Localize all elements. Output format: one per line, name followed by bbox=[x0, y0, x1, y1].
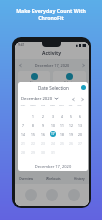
staticText: 17 bbox=[51, 132, 55, 136]
staticText: 6 bbox=[79, 114, 81, 118]
staticText: 31 bbox=[51, 150, 55, 154]
staticText: TUE bbox=[38, 104, 48, 107]
staticText: 1 bbox=[32, 114, 34, 118]
staticText: Make Everyday Count With bbox=[16, 7, 86, 14]
staticText: 9 bbox=[42, 123, 44, 127]
staticText: Workouts bbox=[46, 177, 61, 181]
staticText: 21 bbox=[21, 141, 25, 145]
staticText: 2 bbox=[42, 114, 44, 118]
staticText: 13 bbox=[78, 123, 82, 127]
staticText: MON bbox=[28, 104, 38, 107]
staticText: 12 bbox=[69, 123, 73, 127]
staticText: 8 bbox=[32, 123, 34, 127]
button[interactable]: Workouts bbox=[45, 177, 62, 181]
staticText: 28 bbox=[21, 150, 25, 154]
button[interactable]: Overview bbox=[18, 177, 34, 181]
button[interactable]: Home bbox=[25, 189, 37, 201]
staticText: 4 bbox=[61, 114, 63, 118]
staticText: 7 bbox=[22, 123, 24, 127]
staticText: THU bbox=[57, 104, 66, 107]
staticText: FRI bbox=[66, 104, 75, 107]
staticText: 26 bbox=[69, 141, 73, 145]
button[interactable]: Steps bbox=[18, 71, 50, 87]
staticText: WED bbox=[48, 104, 57, 107]
staticText: Sleep bbox=[66, 100, 74, 104]
button[interactable]: Water bbox=[18, 109, 50, 125]
staticText: 29 bbox=[31, 150, 35, 154]
button[interactable]: December 17, 2020 bbox=[18, 61, 86, 69]
staticText: 27 bbox=[78, 141, 82, 145]
staticText: 3 bbox=[52, 114, 54, 118]
staticText: 15 bbox=[31, 132, 35, 136]
staticText: 5 bbox=[70, 114, 72, 118]
staticText: 30 bbox=[41, 150, 45, 154]
staticText: Calories bbox=[64, 81, 76, 85]
staticText: 25 bbox=[60, 141, 64, 145]
button[interactable]: Heart bbox=[53, 109, 86, 125]
button[interactable]: Distance bbox=[18, 90, 50, 106]
staticText: 10 bbox=[51, 123, 55, 127]
staticText: 20 bbox=[78, 132, 82, 136]
staticText: 24 bbox=[51, 141, 55, 145]
staticText: Activity bbox=[42, 50, 62, 57]
staticText: December 2020 bbox=[21, 96, 53, 102]
staticText: 9:41 bbox=[18, 43, 25, 47]
staticText: December 17, 2020 bbox=[18, 164, 88, 169]
staticText: December 17, 2020 bbox=[23, 63, 81, 68]
staticText: 23 bbox=[41, 141, 45, 145]
staticText: 11 bbox=[60, 123, 64, 127]
button[interactable]: History bbox=[73, 177, 86, 181]
button[interactable]: Previous month bbox=[70, 96, 76, 102]
staticText: 16 bbox=[41, 132, 45, 136]
staticText: 18 bbox=[60, 132, 64, 136]
staticText: 19 bbox=[69, 132, 73, 136]
button[interactable]: Calories bbox=[53, 71, 86, 87]
staticText: 22 bbox=[31, 141, 35, 145]
staticText: Date Selection bbox=[38, 85, 69, 91]
staticText: SAT bbox=[75, 104, 84, 107]
button[interactable]: 17 bbox=[50, 131, 56, 137]
staticText: History bbox=[74, 177, 85, 181]
staticText: ChronoFit bbox=[38, 14, 64, 21]
button[interactable]: Confirm date bbox=[81, 85, 86, 90]
button[interactable]: Activity bbox=[46, 189, 58, 201]
staticText: Steps bbox=[30, 81, 38, 85]
staticText: 14 bbox=[21, 132, 25, 136]
staticText: SUN bbox=[18, 104, 28, 107]
button[interactable]: Profile bbox=[68, 189, 80, 201]
button[interactable]: Sleep bbox=[53, 90, 86, 106]
button[interactable]: Next month bbox=[79, 96, 85, 102]
staticText: Overview bbox=[19, 177, 33, 181]
